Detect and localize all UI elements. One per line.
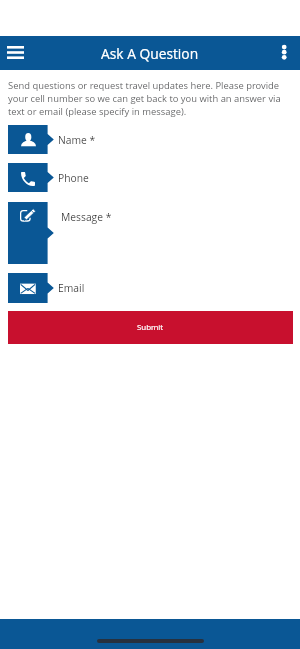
staticText: Ask A Question	[101, 44, 199, 63]
button[interactable]: Message *	[0, 202, 300, 264]
staticText: Email	[58, 281, 85, 295]
button[interactable]: Email	[0, 273, 300, 303]
staticText: Submit	[137, 322, 164, 333]
staticText: Phone	[58, 171, 89, 185]
button[interactable]: Submit	[8, 311, 293, 344]
button[interactable]: Name *	[0, 125, 300, 154]
staticText: Send questions or request travel updates…	[8, 79, 281, 118]
button[interactable]: More options	[270, 36, 300, 70]
button[interactable]: Phone	[0, 163, 300, 192]
button[interactable]: Open navigation menu	[0, 36, 32, 70]
staticText: Message *	[61, 210, 112, 224]
staticText: Name *	[58, 133, 96, 147]
